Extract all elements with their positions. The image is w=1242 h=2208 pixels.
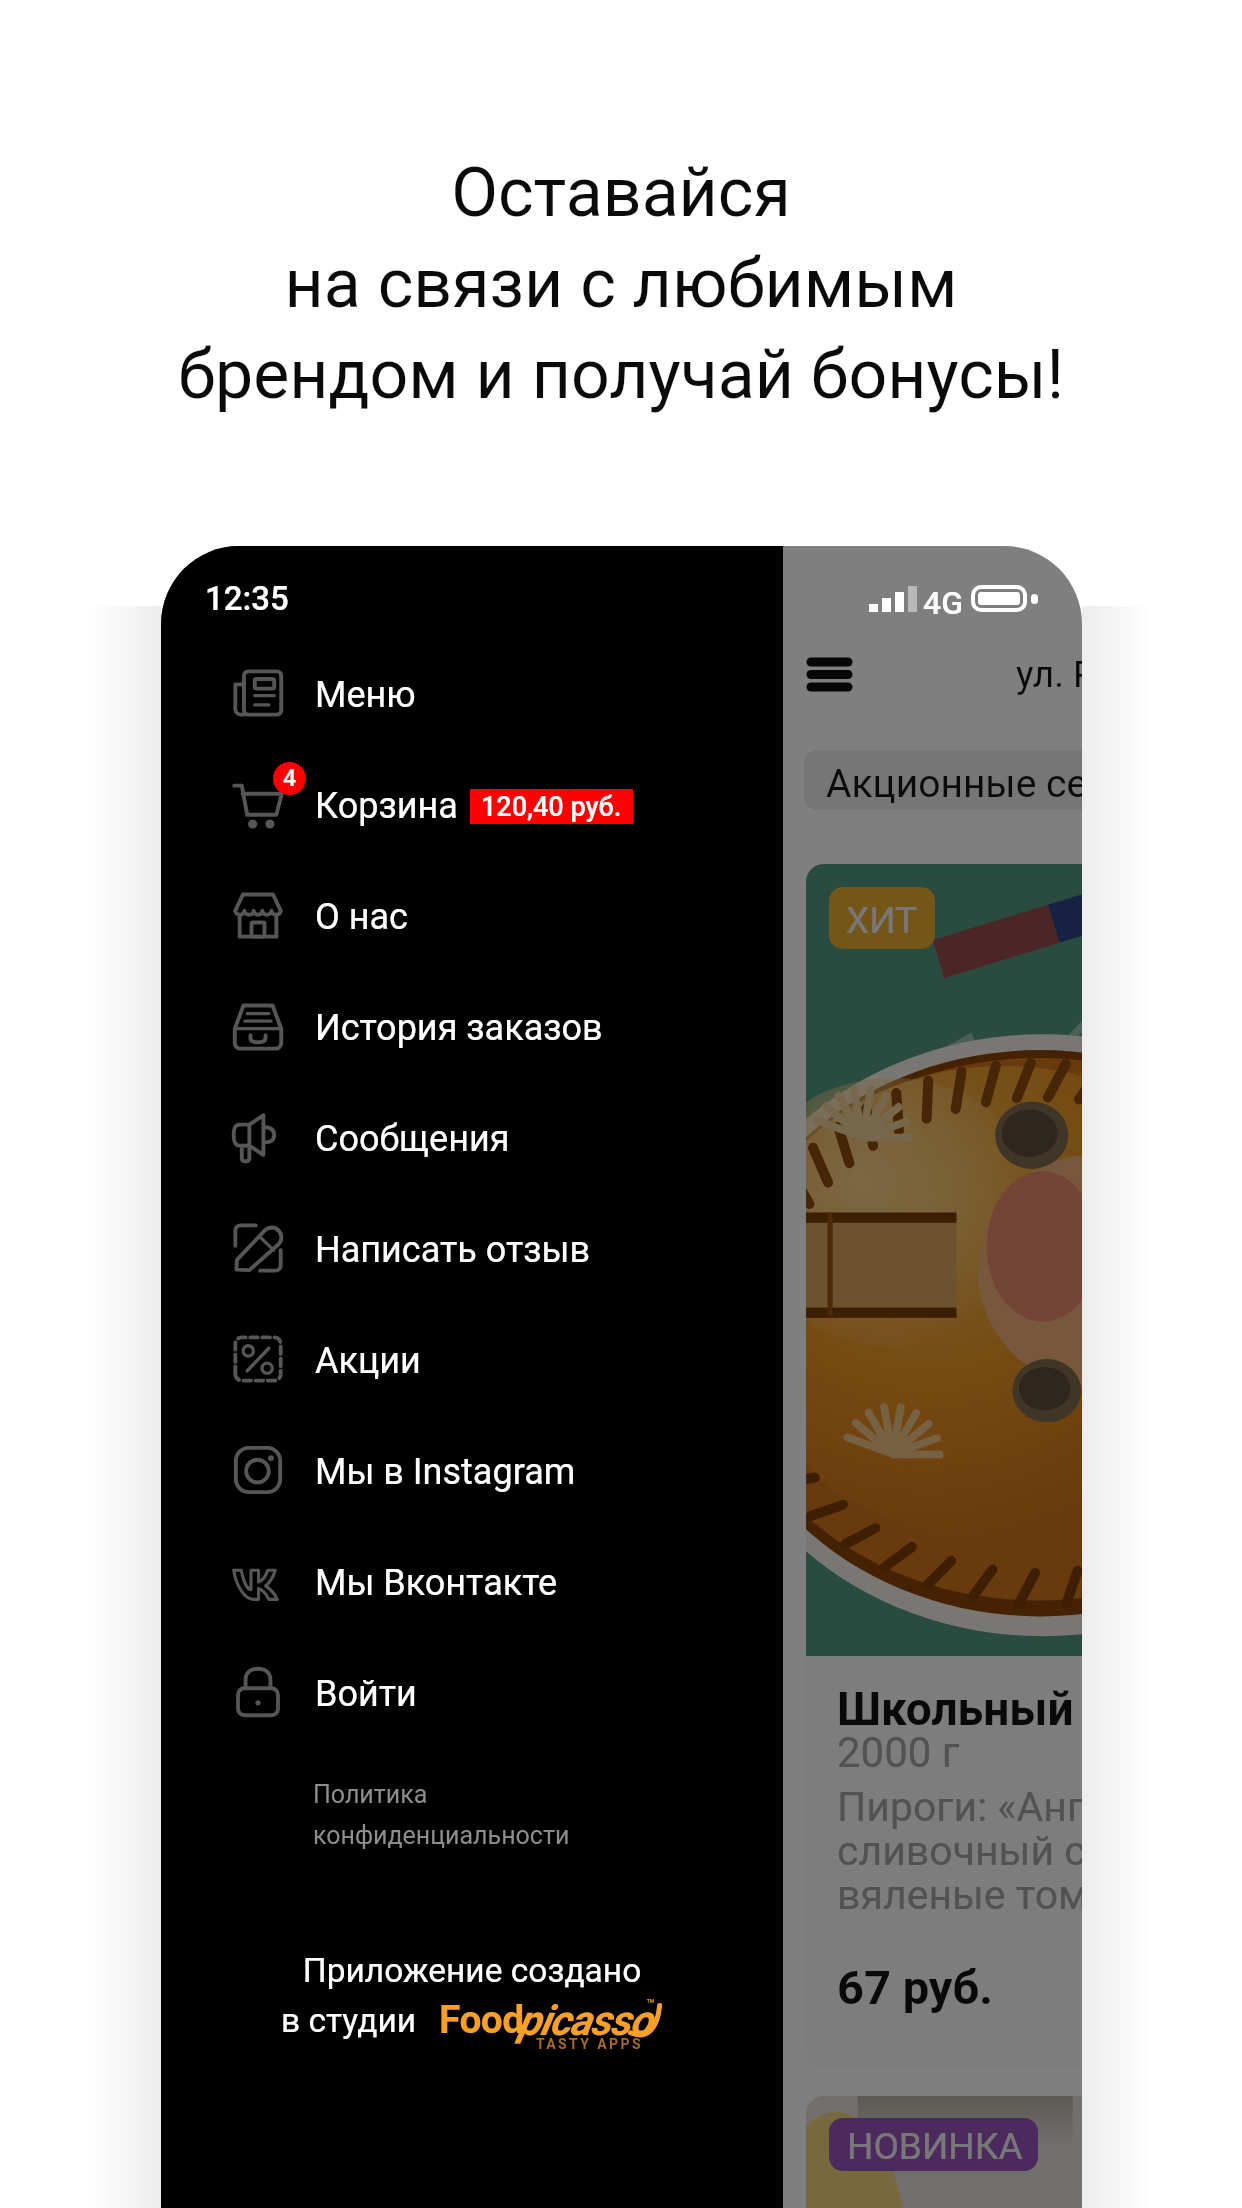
staticText: 4G [923,584,963,622]
staticText: в студии [281,2001,417,2040]
button[interactable]: Open menu [801,656,856,696]
staticText: Пироги: «Английский сливочный соус, вяле… [837,1783,1082,1919]
staticText: Акции [315,1340,421,1382]
button[interactable]: Акции [161,1308,783,1419]
staticText: 67 руб. [837,1960,993,2015]
staticText: ХИТ [846,899,918,942]
staticText: Корзина [315,785,458,827]
staticText: ул. Родниковая [1016,653,1082,696]
staticText: Школьный сет [837,1682,1082,1736]
staticText: НОВИНКА [847,2125,1023,2168]
staticText: Акционные сети [826,761,1082,807]
staticText: Написать отзыв [315,1229,591,1271]
staticText: ™ [646,1996,655,2012]
staticText: picasso [518,1996,652,2045]
button[interactable]: ХИТ [806,864,1082,2068]
button[interactable]: О нас [161,864,783,975]
staticText: 120,40 руб. [481,791,622,823]
staticText: История заказов [315,1007,603,1049]
staticText: Food [439,1997,524,2043]
staticText: 4 [283,765,297,792]
button[interactable]: Меню [161,642,783,753]
button[interactable]: Политика конфиденциальности [313,1780,733,1850]
button[interactable]: НОВИНКА [806,2096,1082,2208]
button[interactable]: 4 [161,753,783,864]
button[interactable]: Мы в Instagram [161,1419,783,1530]
button[interactable]: История заказов [161,975,783,1086]
staticText: Меню [315,674,416,716]
staticText: TASTY APPS [536,2036,643,2052]
button[interactable]: Написать отзыв [161,1197,783,1308]
staticText: Мы в Instagram [315,1451,576,1493]
button[interactable]: Мы Вконтакте [161,1530,783,1641]
staticText: 12:35 [205,579,289,618]
staticText: Сообщения [315,1118,510,1160]
staticText: Политика конфиденциальности [313,1780,570,1850]
button[interactable]: Акционные сети [804,750,1082,810]
staticText: О нас [315,896,408,938]
staticText: Мы Вконтакте [315,1562,558,1604]
staticText: 2000 г [837,1728,960,1777]
button[interactable]: Сообщения [161,1086,783,1197]
button[interactable]: Войти [161,1641,783,1752]
staticText: Войти [315,1673,417,1715]
staticText: Приложение создано [161,1951,783,1990]
staticText: Оставайся на связи с любимым брендом и п… [0,153,1242,415]
